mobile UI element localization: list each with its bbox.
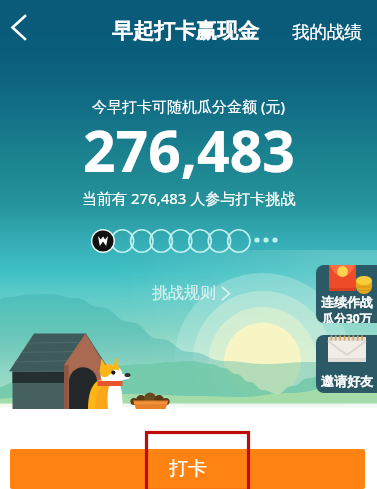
staticText: 打卡 (169, 457, 207, 481)
button[interactable]: 连续作战 (316, 265, 377, 323)
button[interactable]: 我的战绩 (292, 21, 362, 43)
staticText: 邀请好友 (321, 373, 373, 389)
staticText: 连续作战 (321, 294, 373, 310)
staticText: 挑战规则 (152, 283, 216, 303)
staticText: 今早打卡可随机瓜分金额 (元) (92, 96, 285, 116)
button[interactable]: 邀请好友 (316, 335, 377, 393)
staticText: 早起打卡赢现金 (112, 18, 259, 44)
button[interactable]: Back (5, 15, 30, 40)
staticText: 我的战绩 (292, 21, 362, 43)
staticText: 瓜分30万 (322, 310, 372, 323)
staticText: 当前有 276,483 人参与打卡挑战 (82, 188, 296, 208)
button[interactable]: 打卡 (10, 449, 365, 489)
staticText: 276,483 (83, 111, 295, 189)
button[interactable]: 挑战规则 (148, 280, 234, 306)
